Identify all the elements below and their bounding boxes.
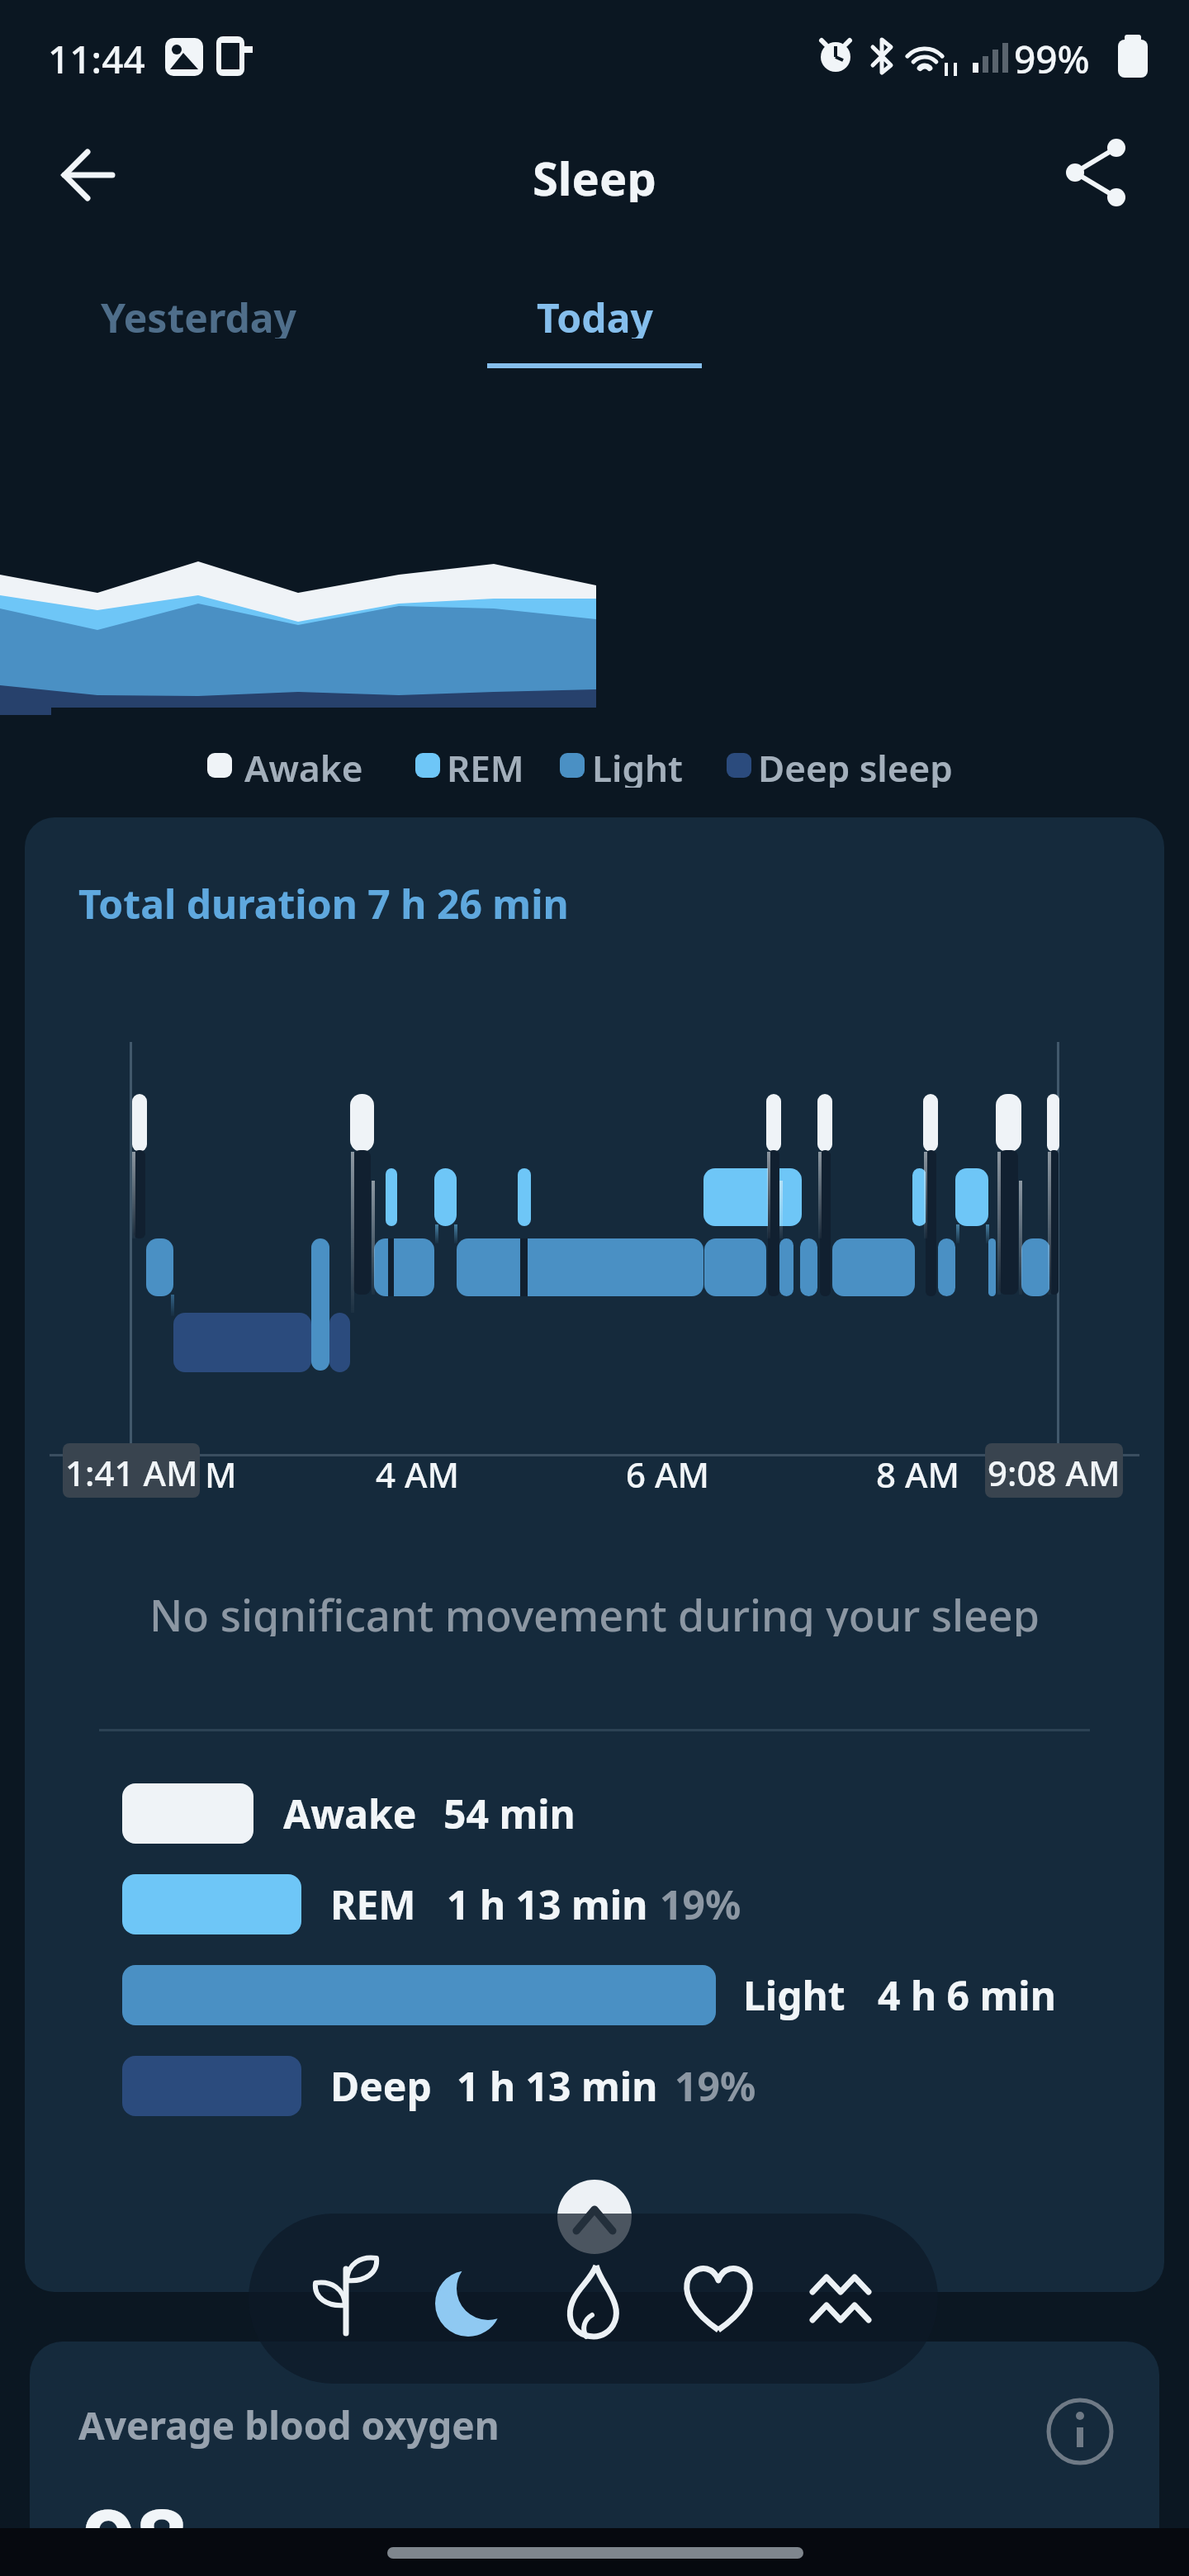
staticText: No significant movement during your slee… [149, 1585, 1040, 1636]
staticText: Awake [283, 1787, 417, 1840]
button[interactable] [791, 2251, 890, 2350]
staticText: Today [537, 291, 653, 339]
staticText: 9:08 AM [988, 1449, 1120, 1496]
staticText: REM [447, 743, 524, 788]
button[interactable] [545, 2251, 644, 2350]
staticText: 19% [660, 1878, 741, 1931]
staticText: 19% [675, 2059, 756, 2113]
staticText: M [205, 1451, 237, 1498]
staticText: REM [330, 1878, 416, 1931]
button[interactable] [297, 2251, 396, 2350]
staticText: Light [743, 1968, 846, 2022]
staticText: 4 h 6 min [878, 1968, 1056, 2022]
staticText: 98 [83, 2477, 189, 2576]
staticText: 1:41 AM [65, 1449, 198, 1496]
staticText: Light [592, 743, 683, 788]
staticText: 11:44 [48, 33, 145, 79]
staticText: 4 AM [376, 1451, 460, 1498]
staticText: 99% [1014, 33, 1090, 79]
staticText: 54 min [443, 1787, 576, 1840]
button[interactable] [471, 281, 718, 363]
staticText: Deep [330, 2059, 432, 2113]
button[interactable] [669, 2251, 768, 2350]
staticText: Total duration 7 h 26 min [78, 877, 569, 930]
staticText: 1 h 13 min [457, 2059, 658, 2113]
button[interactable] [419, 2251, 519, 2350]
staticText: Average blood oxygen [78, 2399, 500, 2449]
button[interactable] [1039, 2390, 1121, 2473]
button[interactable] [545, 2163, 644, 2262]
staticText: Awake [244, 743, 363, 788]
staticText: 6 AM [626, 1451, 710, 1498]
staticText: Deep sleep [758, 743, 953, 788]
button[interactable] [41, 132, 132, 218]
button[interactable] [1049, 124, 1148, 223]
staticText: Sleep [533, 146, 656, 202]
staticText: 1 h 13 min [447, 1878, 648, 1931]
staticText: Yesterday [101, 291, 296, 339]
button[interactable] [74, 281, 322, 363]
staticText: 8 AM [876, 1451, 960, 1498]
